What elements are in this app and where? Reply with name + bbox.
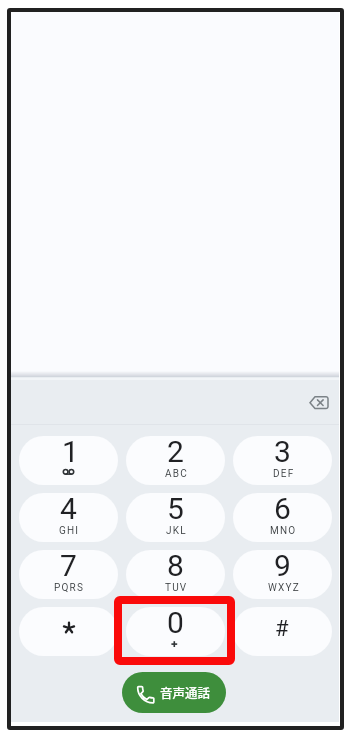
button[interactable]: #	[233, 607, 332, 656]
staticText: 8	[167, 550, 184, 583]
button[interactable]	[19, 607, 118, 656]
staticText: PQRS	[54, 582, 85, 594]
button[interactable]: 7	[19, 550, 118, 599]
button[interactable]: 音声通話	[122, 672, 226, 713]
staticText: 2	[167, 436, 184, 469]
staticText: 音声通話	[160, 683, 211, 701]
button[interactable]: 8	[126, 550, 225, 599]
staticText: 9	[274, 550, 291, 583]
button[interactable]: 3	[233, 436, 332, 485]
button[interactable]: 0	[126, 607, 225, 656]
button[interactable]: 1	[19, 436, 118, 485]
staticText: 0	[167, 607, 184, 640]
staticText: 4	[60, 493, 77, 526]
staticText: JKL	[166, 525, 187, 537]
staticText: WXYZ	[268, 582, 300, 594]
staticText: DEF	[273, 468, 295, 480]
button[interactable]: 5	[126, 493, 225, 542]
button[interactable]: 4	[19, 493, 118, 542]
staticText: MNO	[270, 525, 297, 537]
button[interactable]	[304, 392, 334, 414]
staticText: 6	[274, 493, 291, 526]
button[interactable]: 6	[233, 493, 332, 542]
staticText: 7	[60, 550, 77, 583]
staticText: #	[275, 616, 289, 642]
staticText: 1	[62, 436, 79, 469]
staticText: 3	[274, 436, 291, 469]
staticText: GHI	[59, 525, 80, 537]
button[interactable]: 9	[233, 550, 332, 599]
staticText: 5	[167, 493, 184, 526]
staticText: TUV	[165, 582, 188, 594]
button[interactable]: 2	[126, 436, 225, 485]
staticText: ABC	[165, 468, 188, 480]
